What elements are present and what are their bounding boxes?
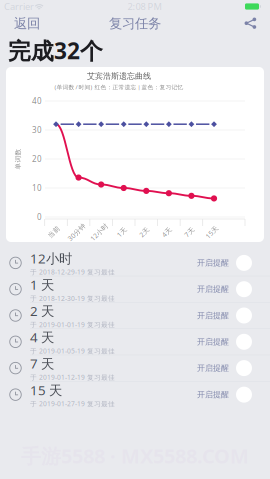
staticText: 开启提醒 bbox=[197, 337, 229, 347]
button[interactable]: 开启提醒 bbox=[197, 383, 270, 407]
staticText: 1天 bbox=[116, 228, 127, 236]
staticText: 12小时 bbox=[30, 249, 72, 267]
staticText: 20 bbox=[32, 154, 42, 164]
staticText: 4 天 bbox=[30, 328, 54, 346]
staticText: 艾宾浩斯遗忘曲线 bbox=[87, 71, 151, 81]
staticText: 于 2018-12-29-19 复习最佳 bbox=[30, 268, 115, 276]
button[interactable]: 开启提醒 bbox=[197, 277, 270, 301]
staticText: 于 2019-01-01-19 复习最佳 bbox=[30, 320, 115, 329]
button[interactable]: 返回 bbox=[0, 10, 50, 37]
staticText: 10 bbox=[32, 183, 42, 193]
button[interactable]: 开启提醒 bbox=[197, 303, 270, 327]
button[interactable]: Share bbox=[234, 12, 270, 35]
staticText: 开启提醒 bbox=[197, 311, 229, 320]
staticText: 于 2019-01-05-19 复习最佳 bbox=[30, 346, 115, 355]
staticText: 当前 bbox=[47, 228, 61, 236]
staticText: 30分钟 bbox=[66, 228, 88, 236]
staticText: 开启提醒 bbox=[197, 258, 229, 268]
staticText: 7 天 bbox=[30, 355, 54, 372]
staticText: 开启提醒 bbox=[197, 363, 229, 373]
staticText: 0 bbox=[37, 212, 42, 222]
button[interactable]: 开启提醒 bbox=[197, 251, 270, 275]
staticText: 30 bbox=[32, 125, 42, 135]
staticText: 15 天 bbox=[30, 381, 62, 399]
staticText: 于 2019-01-12-19 复习最佳 bbox=[30, 373, 115, 382]
staticText: 1 天 bbox=[30, 276, 54, 293]
staticText: 2:08 PM bbox=[127, 0, 161, 13]
staticText: 于 2018-12-30-19 复习最佳 bbox=[30, 294, 115, 303]
staticText: 7天 bbox=[184, 228, 195, 236]
staticText: 于 2019-01-27-19 复习最佳 bbox=[30, 399, 115, 408]
staticText: 完成32个 bbox=[8, 35, 103, 65]
staticText: 12小时 bbox=[88, 228, 110, 236]
staticText: 2天 bbox=[139, 228, 150, 236]
staticText: 15天 bbox=[204, 228, 219, 236]
staticText: (单词数 / 时间) 红色：正常遗忘 | 蓝色：复习记忆 bbox=[54, 83, 183, 91]
button[interactable]: 开启提醒 bbox=[197, 330, 270, 354]
staticText: 单词数 bbox=[7, 155, 28, 163]
staticText: 2 天 bbox=[30, 302, 54, 320]
staticText: 返回 bbox=[14, 15, 40, 32]
button[interactable]: 开启提醒 bbox=[197, 356, 270, 380]
staticText: 4天 bbox=[161, 228, 172, 236]
staticText: 开启提醒 bbox=[197, 390, 229, 399]
staticText: 开启提醒 bbox=[197, 284, 229, 294]
staticText: Carrier bbox=[4, 0, 34, 13]
staticText: 40 bbox=[32, 96, 42, 106]
staticText: 复习任务 bbox=[109, 15, 161, 32]
